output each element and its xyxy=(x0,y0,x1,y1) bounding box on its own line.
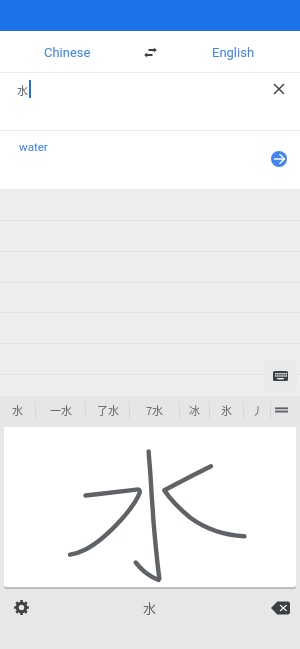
button[interactable]: 一水 xyxy=(36,396,85,424)
staticText: 丿 xyxy=(252,402,263,418)
staticText: 氷 xyxy=(221,402,232,418)
button[interactable]: 7水 xyxy=(130,396,179,424)
button[interactable]: Swap languages xyxy=(134,32,166,73)
button[interactable]: Show keyboard xyxy=(264,360,297,392)
button[interactable]: More candidates xyxy=(271,396,300,424)
button[interactable]: 冰 xyxy=(180,396,209,424)
button[interactable]: English xyxy=(166,32,300,73)
staticText: English xyxy=(212,45,255,60)
staticText: water xyxy=(19,140,48,153)
button[interactable] xyxy=(4,427,296,587)
staticText: 水 xyxy=(143,598,157,617)
button[interactable]: Clear text xyxy=(258,74,300,104)
staticText: 水 xyxy=(12,402,23,418)
button[interactable]: 了水 xyxy=(86,396,129,424)
button[interactable]: Backspace xyxy=(270,600,290,615)
button[interactable]: 水 xyxy=(135,596,165,619)
staticText: 7水 xyxy=(146,402,164,418)
staticText: 了水 xyxy=(97,402,119,418)
staticText: 冰 xyxy=(189,402,200,418)
button[interactable]: Settings xyxy=(13,599,29,615)
button[interactable]: Chinese xyxy=(0,32,134,73)
staticText: 水 xyxy=(17,82,28,98)
staticText: 一水 xyxy=(50,402,72,418)
button[interactable]: 水 xyxy=(0,396,35,424)
staticText: Chinese xyxy=(44,45,91,60)
button[interactable]: 丿 xyxy=(244,396,270,424)
button[interactable]: 氷 xyxy=(210,396,243,424)
button[interactable]: Open translation xyxy=(271,151,287,167)
